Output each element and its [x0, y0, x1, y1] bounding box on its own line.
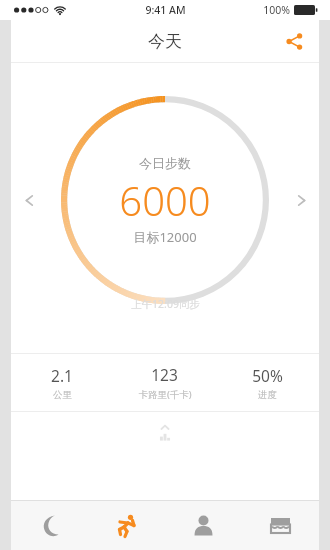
- button[interactable]: 2.1: [11, 354, 113, 411]
- button[interactable]: 50%: [216, 354, 319, 411]
- staticText: 公里: [53, 389, 72, 401]
- staticText: 50%: [252, 365, 283, 386]
- staticText: 2.1: [51, 365, 73, 386]
- button[interactable]: 123: [113, 354, 216, 411]
- staticText: 123: [151, 364, 178, 385]
- staticText: 卡路里(千卡): [138, 388, 192, 401]
- staticText: 今日步数: [139, 155, 191, 171]
- staticText: 100%: [263, 3, 290, 17]
- button[interactable]: Sleep: [11, 501, 88, 550]
- button[interactable]: Previous day: [11, 182, 47, 218]
- staticText: 目标12000: [133, 228, 197, 246]
- staticText: 进度: [258, 389, 277, 401]
- button[interactable]: Store: [242, 501, 319, 550]
- staticText: 上午12:09同步: [131, 297, 200, 311]
- staticText: 今天: [148, 31, 182, 52]
- button[interactable]: Activity: [88, 501, 165, 550]
- button[interactable]: Next day: [283, 182, 319, 218]
- staticText: 9:41 AM: [145, 3, 186, 17]
- button[interactable]: Profile: [165, 501, 242, 550]
- button[interactable]: Share: [275, 22, 313, 60]
- staticText: 6000: [119, 173, 211, 227]
